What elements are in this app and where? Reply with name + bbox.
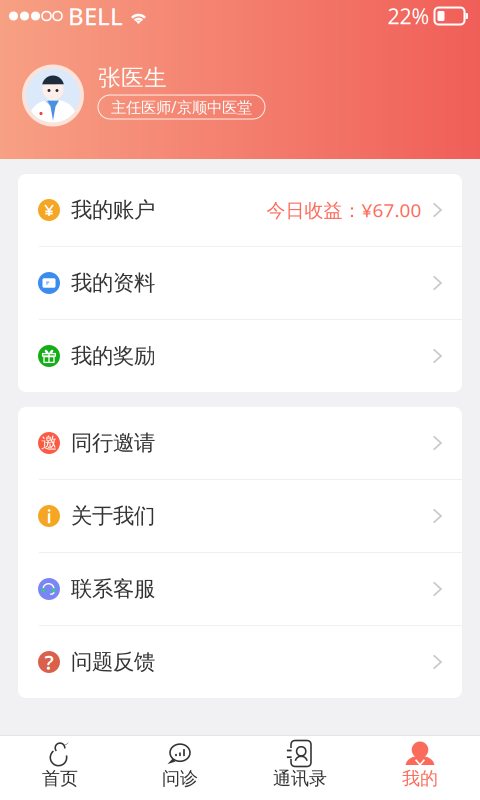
staticText: 主任医师/京顺中医堂 — [111, 97, 252, 117]
button[interactable]: 我的资料 — [18, 247, 462, 319]
button[interactable]: 首页 — [0, 733, 120, 800]
staticText: 问诊 — [162, 767, 198, 790]
staticText: 我的奖励 — [71, 343, 155, 369]
staticText: 我的 — [402, 767, 438, 790]
staticText: 首页 — [42, 767, 78, 790]
staticText: 同行邀请 — [71, 430, 155, 456]
button[interactable]: i — [18, 480, 462, 552]
button[interactable]: 邀 — [18, 407, 462, 479]
staticText: 我的资料 — [71, 270, 155, 296]
staticText: 22% — [387, 2, 429, 30]
staticText: i — [46, 503, 51, 529]
button[interactable]: 我的 — [360, 733, 480, 800]
button[interactable]: 问诊 — [120, 733, 240, 800]
button[interactable]: 我的账户 — [18, 174, 462, 246]
button[interactable]: 通讯录 — [240, 733, 360, 800]
staticText: 关于我们 — [71, 503, 155, 529]
staticText: 通讯录 — [273, 767, 327, 790]
staticText: 邀 — [41, 433, 57, 453]
staticText: 张医生 — [98, 64, 167, 92]
button[interactable]: ? — [18, 626, 462, 698]
staticText: 今日收益：¥67.00 — [267, 197, 422, 223]
button[interactable]: 联系客服 — [18, 553, 462, 625]
staticText: BELL — [68, 0, 123, 32]
staticText: 我的账户 — [71, 197, 155, 223]
button[interactable]: 我的奖励 — [18, 320, 462, 392]
staticText: 问题反馈 — [71, 649, 155, 675]
staticText: ? — [44, 648, 53, 676]
staticText: 联系客服 — [71, 576, 155, 602]
